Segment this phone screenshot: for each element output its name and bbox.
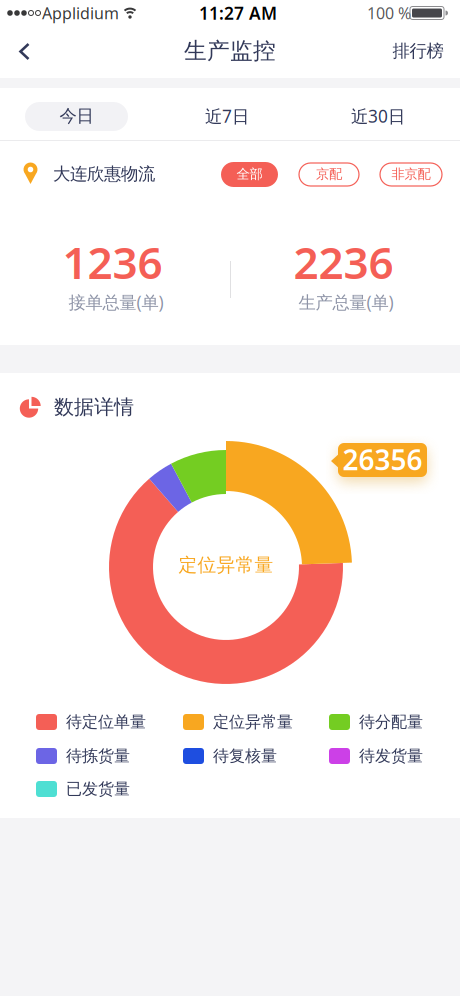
staticText: 非京配 bbox=[391, 166, 430, 182]
staticText: 近30日 bbox=[351, 104, 405, 127]
staticText: 近7日 bbox=[205, 104, 249, 127]
staticText: 生产总量(单) bbox=[298, 290, 393, 313]
staticText: 100 % bbox=[367, 2, 411, 24]
staticText: Applidium bbox=[42, 2, 119, 24]
staticText: 待发货量 bbox=[359, 746, 423, 766]
staticText: 待分配量 bbox=[359, 712, 423, 732]
staticText: 11:27 AM bbox=[199, 1, 277, 24]
staticText: 定位异常量 bbox=[178, 553, 273, 576]
staticText: 定位异常量 bbox=[213, 712, 293, 732]
staticText: 待拣货量 bbox=[66, 746, 130, 766]
staticText: 数据详情 bbox=[54, 395, 134, 419]
staticText: 待复核量 bbox=[213, 746, 277, 766]
staticText: 京配 bbox=[316, 166, 342, 182]
staticText: 生产监控 bbox=[184, 37, 276, 65]
staticText: 待定位单量 bbox=[66, 712, 146, 732]
staticText: 已发货量 bbox=[66, 779, 130, 799]
staticText: 大连欣惠物流 bbox=[53, 163, 155, 185]
staticText: 1236 bbox=[62, 233, 162, 291]
staticText: 今日 bbox=[59, 105, 93, 127]
staticText: 全部 bbox=[236, 166, 262, 182]
staticText: 接单总量(单) bbox=[68, 290, 163, 313]
staticText: 排行榜 bbox=[392, 40, 443, 62]
staticText: 26356 bbox=[342, 441, 422, 478]
staticText: 2236 bbox=[293, 233, 393, 291]
